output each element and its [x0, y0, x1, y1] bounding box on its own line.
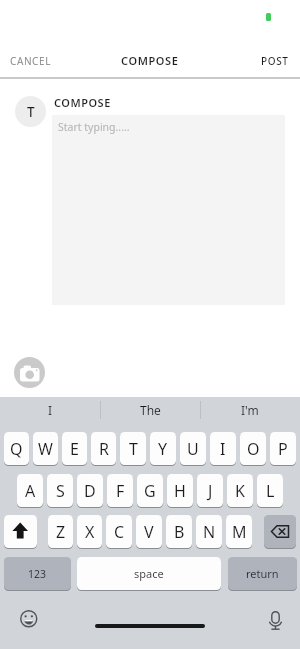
button[interactable]: I'm: [200, 397, 300, 423]
staticText: L: [266, 480, 275, 502]
button[interactable]: V: [136, 515, 162, 548]
staticText: POST: [261, 54, 289, 68]
button[interactable]: 123: [4, 557, 71, 590]
button[interactable]: O: [240, 432, 266, 465]
button[interactable]: J: [197, 474, 223, 507]
staticText: U: [187, 438, 199, 460]
button[interactable]: F: [107, 474, 133, 507]
staticText: M: [232, 521, 247, 543]
button[interactable]: [264, 515, 296, 548]
button[interactable]: W: [33, 432, 58, 465]
button[interactable]: X: [77, 515, 102, 548]
staticText: D: [84, 480, 96, 502]
staticText: N: [203, 521, 216, 543]
button[interactable]: B: [166, 515, 192, 548]
button[interactable]: Start typing.....: [52, 115, 285, 305]
button[interactable]: The: [100, 397, 200, 423]
button[interactable]: R: [91, 432, 116, 465]
button[interactable]: K: [227, 474, 253, 507]
button[interactable]: A: [17, 474, 43, 507]
staticText: J: [208, 480, 213, 502]
staticText: G: [144, 480, 156, 502]
button[interactable]: CANCEL: [6, 50, 56, 72]
button[interactable]: Y: [150, 432, 176, 465]
button[interactable]: N: [196, 515, 222, 548]
button[interactable]: H: [167, 474, 193, 507]
button[interactable]: E: [62, 432, 87, 465]
staticText: T: [27, 103, 35, 121]
button[interactable]: M: [226, 515, 252, 548]
button[interactable]: space: [77, 557, 221, 590]
staticText: Q: [10, 438, 23, 460]
button[interactable]: I: [210, 432, 236, 465]
staticText: B: [174, 521, 185, 543]
staticText: Z: [56, 521, 66, 543]
staticText: COMPOSE: [54, 95, 111, 110]
button[interactable]: C: [106, 515, 132, 548]
staticText: Y: [158, 438, 168, 460]
button[interactable]: Q: [4, 432, 29, 465]
button[interactable]: [14, 357, 45, 388]
staticText: 123: [28, 567, 47, 581]
button[interactable]: U: [180, 432, 206, 465]
staticText: O: [247, 438, 260, 460]
staticText: F: [116, 480, 125, 502]
staticText: T: [129, 438, 138, 460]
button[interactable]: [4, 515, 37, 548]
staticText: CANCEL: [10, 54, 52, 68]
button[interactable]: POST: [257, 50, 293, 72]
staticText: The: [140, 402, 161, 418]
staticText: A: [25, 480, 36, 502]
staticText: C: [114, 521, 125, 543]
button[interactable]: D: [77, 474, 103, 507]
staticText: H: [174, 480, 186, 502]
button[interactable]: G: [137, 474, 163, 507]
staticText: W: [38, 438, 53, 460]
button[interactable]: S: [47, 474, 73, 507]
button[interactable]: L: [257, 474, 283, 507]
staticText: V: [144, 521, 154, 543]
button[interactable]: I: [0, 397, 100, 423]
button[interactable]: T: [120, 432, 146, 465]
staticText: R: [99, 438, 109, 460]
staticText: K: [235, 480, 245, 502]
staticText: X: [85, 521, 95, 543]
staticText: I: [220, 438, 226, 460]
staticText: COMPOSE: [121, 53, 179, 68]
button[interactable]: return: [228, 557, 297, 590]
staticText: return: [246, 566, 279, 581]
staticText: P: [278, 438, 288, 460]
button[interactable]: Z: [48, 515, 73, 548]
staticText: I'm: [241, 402, 259, 418]
staticText: E: [70, 438, 79, 460]
staticText: I: [48, 402, 53, 418]
staticText: space: [134, 566, 164, 581]
button[interactable]: P: [270, 432, 296, 465]
staticText: Start typing.....: [58, 120, 130, 134]
staticText: S: [56, 480, 65, 502]
